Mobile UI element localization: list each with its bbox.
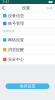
staticText: 设备信息 bbox=[8, 13, 24, 18]
button[interactable]: 账号管理 bbox=[0, 20, 55, 27]
staticText: 账号管理 bbox=[8, 21, 24, 26]
staticText: 安全中心 bbox=[8, 57, 24, 62]
staticText: 网络设置 bbox=[8, 37, 24, 42]
staticText: 设置 bbox=[22, 5, 30, 10]
staticText: 9:41 bbox=[2, 0, 9, 4]
button[interactable]: 完成 bbox=[45, 4, 52, 12]
staticText: 通用设置 bbox=[3, 30, 15, 33]
button[interactable]: 网络设置 bbox=[0, 35, 55, 45]
button[interactable]: Back bbox=[0, 4, 6, 12]
staticText: 保存设置 bbox=[19, 84, 35, 89]
button[interactable]: 保存设置 bbox=[5, 83, 49, 89]
button[interactable]: 消息提醒 bbox=[0, 45, 55, 54]
button[interactable]: 设备信息 bbox=[0, 12, 55, 19]
button[interactable]: 安全中心 bbox=[0, 55, 55, 64]
staticText: 完成 bbox=[46, 6, 52, 10]
staticText: 消息提醒 bbox=[8, 47, 24, 52]
